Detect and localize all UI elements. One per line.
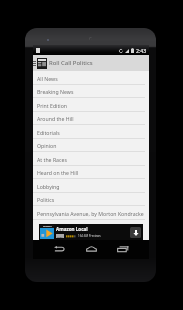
staticText: Opinion xyxy=(37,142,57,149)
staticText: All News xyxy=(37,75,58,82)
button[interactable]: Breaking News xyxy=(33,84,149,98)
staticText: Breaking News xyxy=(37,88,74,95)
staticText: Politics xyxy=(37,196,55,203)
staticText: Pennsylvania Avenue, by Morton Kondracke xyxy=(37,210,144,217)
staticText: Editorials xyxy=(37,129,60,136)
button[interactable]: amazon xyxy=(39,224,143,240)
button[interactable]: At the Races xyxy=(33,152,149,166)
staticText: Amazon Local xyxy=(56,226,88,232)
button[interactable]: Back xyxy=(52,241,67,256)
button[interactable]: All News xyxy=(33,71,149,85)
staticText: Roll Call Politics xyxy=(49,59,93,67)
button[interactable]: Lobbying xyxy=(33,179,149,193)
button[interactable]: Pennsylvania Avenue, by Morton Kondracke xyxy=(33,206,149,220)
button[interactable]: Editorials xyxy=(33,125,149,139)
staticText: Lobbying xyxy=(37,183,60,190)
staticText: 164.6M Previews xyxy=(78,234,101,238)
staticText: Heard on the Hill xyxy=(37,169,79,176)
staticText: Print Edition xyxy=(37,102,68,109)
button[interactable]: Recent apps xyxy=(115,241,130,256)
button[interactable]: Heard on the Hill xyxy=(33,165,149,179)
button[interactable]: Politics xyxy=(33,192,149,206)
button[interactable]: Open navigation drawer xyxy=(33,55,149,71)
staticText: FREE xyxy=(57,235,63,238)
button[interactable]: Around the Hill xyxy=(33,111,149,125)
staticText: Around the Hill xyxy=(37,115,74,122)
staticText: At the Races xyxy=(37,156,67,163)
button[interactable]: Home xyxy=(84,241,99,256)
button[interactable]: Opinion xyxy=(33,138,149,152)
button[interactable]: Install xyxy=(130,227,141,238)
button[interactable]: Print Edition xyxy=(33,98,149,112)
other: Open navigation drawer xyxy=(33,61,36,66)
staticText: amazon xyxy=(43,225,52,228)
staticText: 2:43 xyxy=(136,47,147,54)
